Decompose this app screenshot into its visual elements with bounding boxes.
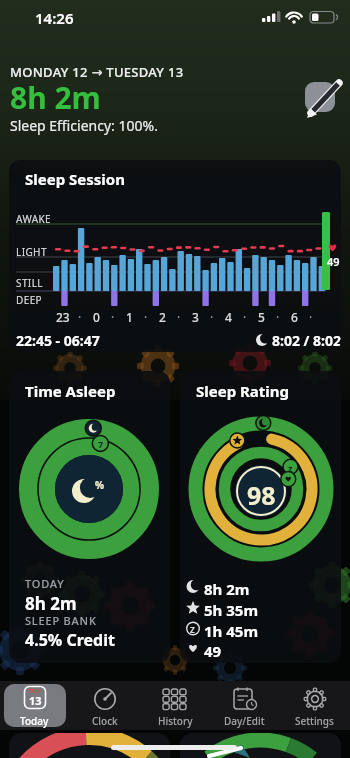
staticText: 6: [291, 309, 298, 325]
staticText: 14:26: [35, 8, 74, 28]
button[interactable]: [140, 681, 210, 730]
staticText: ·: [78, 309, 82, 325]
staticText: 49: [327, 254, 340, 269]
staticText: Sleep Efficiency: 100%.: [10, 116, 158, 135]
button[interactable]: [70, 681, 140, 730]
button[interactable]: [305, 82, 335, 112]
staticText: TUE: [28, 687, 40, 695]
staticText: TODAY: [25, 576, 65, 591]
staticText: AWAKE: [16, 212, 52, 226]
staticText: 1: [126, 309, 133, 325]
staticText: Clock: [92, 714, 118, 728]
staticText: ·: [276, 309, 280, 325]
staticText: 3: [192, 309, 199, 325]
staticText: 5: [258, 309, 265, 325]
button[interactable]: [4, 684, 66, 727]
staticText: 13: [29, 693, 42, 708]
staticText: 0: [93, 309, 100, 325]
button[interactable]: [210, 681, 280, 730]
button[interactable]: [280, 681, 350, 730]
staticText: 8h 2m: [204, 579, 250, 599]
staticText: Today: [20, 714, 49, 728]
staticText: 5h 35m: [204, 600, 259, 620]
staticText: Settings: [295, 714, 334, 728]
staticText: 8:02 / 8:02: [272, 331, 341, 350]
staticText: %: [95, 478, 105, 492]
staticText: ·: [309, 309, 313, 325]
staticText: Day/Edit: [224, 714, 265, 728]
staticText: ·: [144, 309, 148, 325]
staticText: Sleep Rating: [196, 381, 290, 401]
staticText: ·: [177, 309, 181, 325]
staticText: MONDAY 12 → TUESDAY 13: [10, 63, 184, 81]
staticText: DEEP: [16, 293, 43, 307]
staticText: ·: [111, 309, 115, 325]
staticText: 49: [204, 641, 222, 661]
staticText: 22:45 - 06:47: [16, 331, 100, 350]
staticText: ·: [210, 309, 214, 325]
staticText: SLEEP BANK: [25, 613, 97, 628]
staticText: z: [190, 622, 195, 636]
staticText: 8h 2m: [25, 592, 77, 615]
staticText: 98: [247, 478, 276, 512]
staticText: Sleep Session: [25, 169, 125, 189]
staticText: 4: [225, 309, 232, 325]
staticText: 7: [98, 438, 104, 450]
staticText: 2: [159, 309, 166, 325]
staticText: LIGHT: [16, 245, 47, 259]
staticText: ·: [243, 309, 247, 325]
staticText: 8h 2m: [10, 77, 101, 118]
staticText: Time Asleep: [25, 381, 116, 401]
staticText: History: [158, 714, 193, 728]
staticText: STILL: [16, 276, 43, 290]
staticText: 4.5% Credit: [25, 629, 115, 651]
staticText: z: [288, 462, 293, 474]
staticText: 1h 45m: [204, 621, 259, 641]
staticText: 23: [56, 309, 70, 325]
